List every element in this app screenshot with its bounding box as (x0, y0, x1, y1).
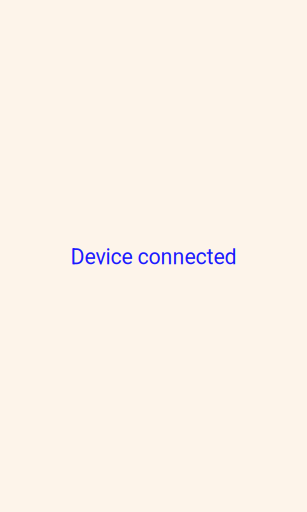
staticText: Device connected (70, 244, 236, 269)
